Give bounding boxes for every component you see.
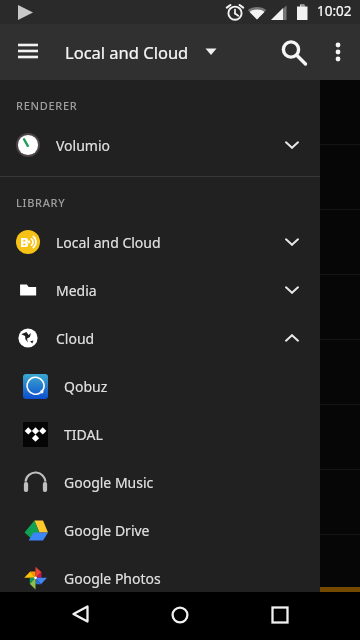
staticText: LIBRARY [16, 195, 66, 210]
staticText: Cloud [56, 329, 95, 348]
button[interactable]: Qobuz [0, 362, 320, 410]
button[interactable]: Recent apps [240, 592, 360, 640]
button[interactable]: Google Photos [0, 554, 320, 602]
button[interactable]: Volumio [0, 121, 320, 169]
staticText: TIDAL [64, 425, 103, 444]
button[interactable]: Open navigation drawer [8, 32, 48, 72]
staticText: Local and Cloud [56, 233, 161, 252]
staticText: Local and Cloud [65, 41, 189, 63]
button[interactable]: Home [120, 592, 240, 640]
button[interactable]: Media [0, 266, 320, 314]
button[interactable]: Back [0, 592, 120, 640]
button[interactable]: Google Music [0, 458, 320, 506]
staticText: B [20, 233, 29, 251]
staticText: Google Music [64, 473, 154, 492]
staticText: 10:02 [317, 2, 352, 20]
button[interactable]: Change source [197, 38, 225, 66]
button[interactable]: Google Drive [0, 506, 320, 554]
staticText: Media [56, 281, 97, 300]
button[interactable]: More options [318, 32, 358, 72]
staticText: RENDERER [16, 98, 78, 113]
staticText: Google Photos [64, 569, 161, 588]
staticText: Qobuz [64, 377, 108, 396]
button[interactable]: Cloud [0, 314, 320, 362]
staticText: Volumio [56, 136, 111, 155]
button[interactable]: Search [271, 32, 311, 72]
button[interactable]: B [0, 218, 320, 266]
button[interactable]: TIDAL [0, 410, 320, 458]
staticText: Google Drive [64, 521, 150, 540]
